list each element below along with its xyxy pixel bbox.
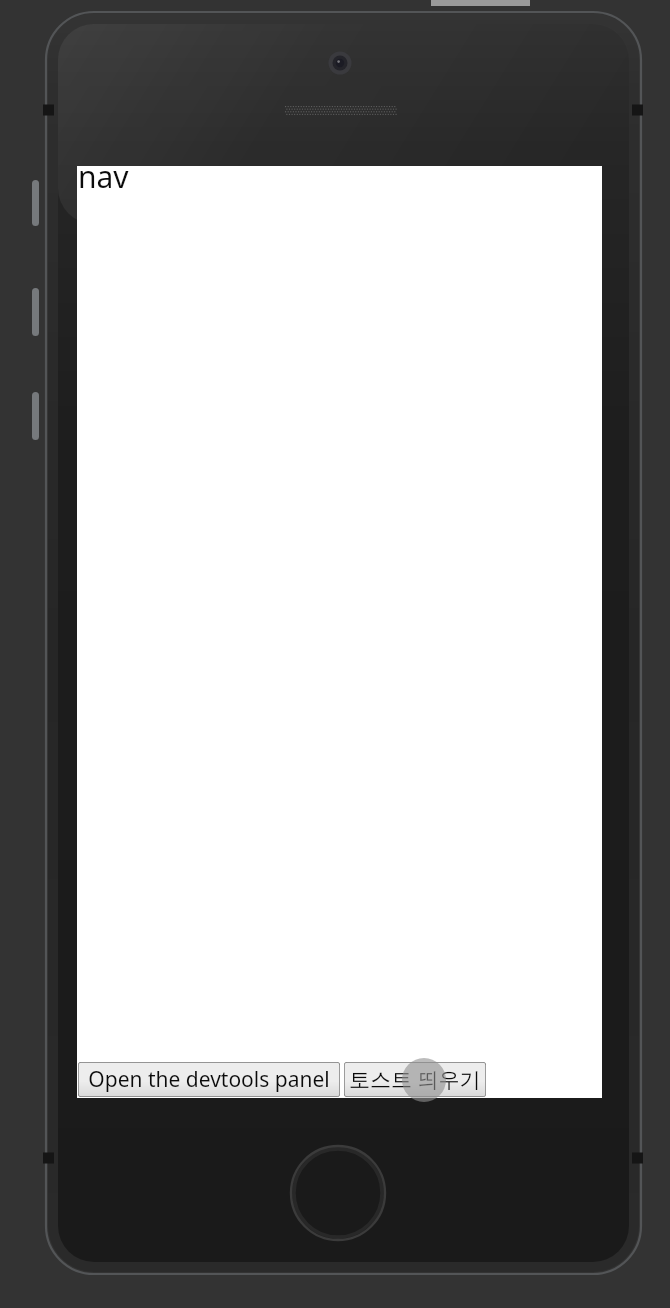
staticText: nav bbox=[78, 156, 129, 197]
other: Touch indicator bbox=[402, 1058, 446, 1102]
staticText: Open the devtools panel bbox=[88, 1065, 330, 1094]
button[interactable]: Open the devtools panel bbox=[78, 1062, 340, 1097]
staticText: 토스트 띄우기 bbox=[349, 1065, 481, 1094]
button[interactable]: 토스트 띄우기 bbox=[344, 1062, 486, 1097]
